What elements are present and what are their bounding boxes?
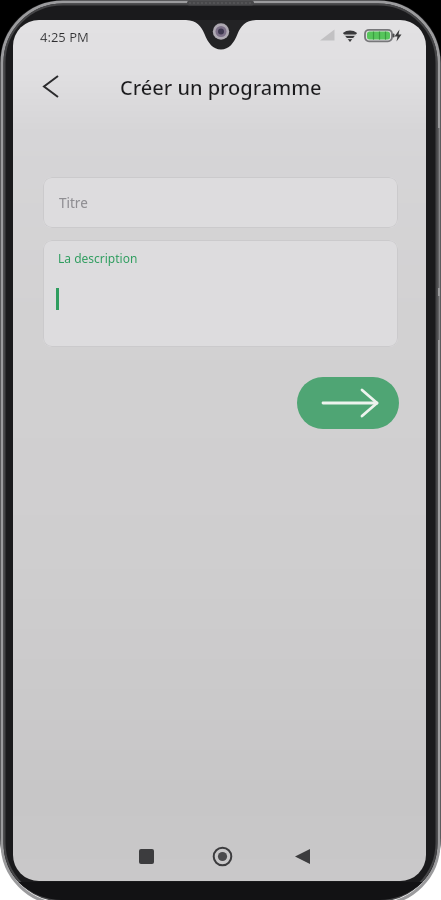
button[interactable]: Titre (43, 177, 398, 228)
staticText: La description (58, 250, 138, 266)
button[interactable]: La description (43, 240, 398, 347)
staticText: 4:25 PM (40, 28, 89, 46)
button[interactable] (32, 70, 68, 104)
button[interactable] (297, 377, 399, 429)
button[interactable] (127, 837, 167, 877)
button[interactable] (283, 837, 323, 877)
staticText: Créer un programme (120, 74, 322, 101)
staticText: Titre (59, 194, 88, 212)
button[interactable] (202, 837, 242, 877)
